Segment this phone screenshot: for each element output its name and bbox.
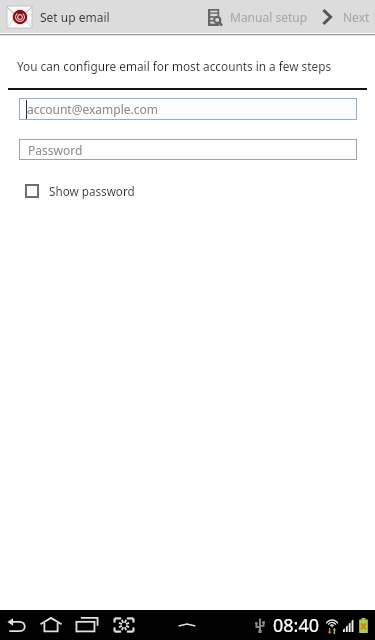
button[interactable]: Home — [36, 613, 66, 636]
staticText: Set up email — [40, 9, 110, 25]
staticText: 08:40 — [273, 613, 320, 638]
staticText: Password — [28, 142, 83, 158]
button[interactable]: Notifications — [173, 617, 201, 633]
staticText: You can configure email for most account… — [17, 58, 332, 74]
button[interactable]: Recent apps — [72, 613, 102, 636]
button[interactable]: Back — [3, 614, 30, 637]
staticText: account@example.com — [27, 101, 158, 117]
button[interactable]: Set up email — [0, 0, 115, 34]
button[interactable]: Next — [315, 0, 375, 34]
staticText: Manual setup — [230, 9, 308, 25]
button[interactable]: Show password — [25, 183, 135, 199]
staticText: Next — [343, 9, 370, 25]
button[interactable]: Screenshot — [109, 613, 139, 637]
button[interactable]: Manual setup — [208, 0, 315, 34]
staticText: Show password — [49, 183, 135, 199]
